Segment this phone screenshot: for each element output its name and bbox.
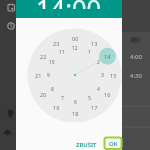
staticText: 6	[74, 99, 77, 106]
staticText: 5	[88, 95, 91, 102]
staticText: 18	[72, 110, 79, 117]
staticText: OK	[109, 140, 118, 148]
staticText: ZRUŠIT	[76, 141, 97, 149]
staticText: 7	[61, 95, 64, 102]
staticText: 20	[40, 91, 47, 98]
staticText: 12	[72, 45, 78, 52]
staticText: 22	[40, 53, 47, 60]
staticText: 21	[35, 72, 42, 79]
button[interactable]: OK	[104, 137, 122, 150]
staticText: 8	[51, 86, 54, 93]
staticText: 3	[101, 72, 104, 79]
staticText: 9	[47, 72, 50, 79]
staticText: 11	[59, 49, 65, 56]
staticText: 4:00	[130, 53, 142, 61]
staticText: 19	[53, 104, 60, 111]
button[interactable]: ZRUŠIT	[72, 139, 100, 150]
staticText: 4:30	[130, 72, 142, 80]
staticText: 10	[49, 59, 55, 66]
staticText: 00	[72, 35, 79, 42]
staticText: 1	[88, 49, 91, 56]
staticText: 15	[110, 72, 117, 79]
staticText: 4	[97, 86, 100, 93]
staticText: 23	[53, 40, 60, 47]
staticText: 17	[91, 104, 98, 111]
staticText: 14	[104, 53, 111, 60]
staticText: 13	[91, 40, 98, 47]
staticText: 14:00	[36, 0, 102, 9]
staticText: 2	[97, 59, 100, 66]
staticText: 16	[104, 91, 111, 98]
